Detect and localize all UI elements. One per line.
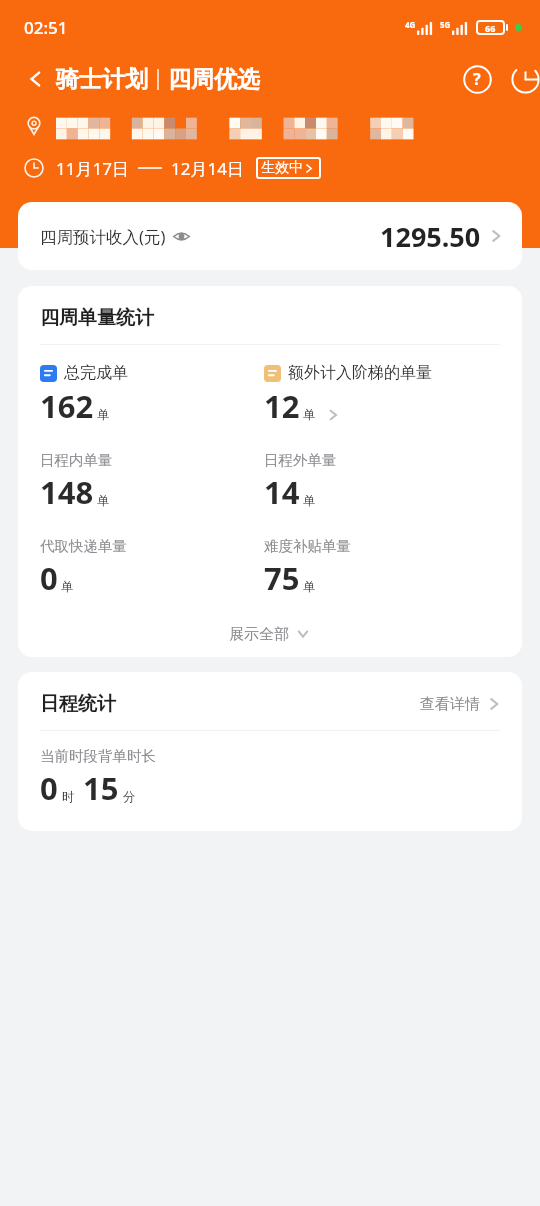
button[interactable]: 展示全部	[18, 611, 522, 657]
staticText: 0	[40, 767, 58, 809]
staticText: 单	[97, 407, 110, 423]
staticText: 单	[61, 579, 74, 595]
staticText: 1295.50	[380, 218, 481, 255]
button[interactable]: Back	[18, 63, 50, 95]
staticText: 生效中	[261, 159, 303, 177]
staticText: 11月17日	[56, 157, 129, 180]
staticText: ?	[473, 68, 481, 90]
staticText: 单	[97, 493, 110, 509]
button[interactable]: 四周预计收入(元)	[18, 202, 522, 270]
staticText: 日程内单量	[40, 451, 113, 469]
staticText: 4G	[405, 19, 416, 30]
staticText: 75	[264, 557, 300, 599]
staticText: 66	[485, 22, 496, 34]
staticText: 单	[303, 493, 316, 509]
staticText: 0	[40, 557, 58, 599]
button[interactable]: 额外计入阶梯的单量	[264, 363, 500, 427]
staticText: 展示全部	[229, 625, 289, 644]
button[interactable]: Help	[456, 58, 498, 100]
staticText: 单	[303, 579, 316, 595]
staticText: 分	[123, 789, 136, 805]
button[interactable]: 生效中	[256, 157, 321, 179]
staticText: 总完成单	[64, 363, 128, 383]
staticText: 代取快递单量	[40, 537, 127, 555]
staticText: 14	[264, 471, 300, 513]
staticText: 148	[40, 471, 94, 513]
staticText: 单	[303, 407, 316, 423]
staticText: 四周单量统计	[40, 306, 154, 330]
staticText: 时	[62, 789, 75, 805]
staticText: 日程外单量	[264, 451, 337, 469]
button[interactable]: Order history	[504, 58, 540, 100]
staticText: 5G	[440, 19, 451, 30]
staticText: 四周预计收入(元)	[40, 225, 166, 248]
staticText: 02:51	[24, 16, 68, 39]
button[interactable]: 日程统计	[18, 672, 522, 730]
button[interactable]: 总完成单	[40, 363, 264, 427]
staticText: 15	[83, 767, 119, 809]
staticText: 162	[40, 385, 94, 427]
staticText: 当前时段背单时长	[40, 747, 156, 765]
staticText: 12	[264, 385, 300, 427]
staticText: 日程统计	[40, 692, 116, 716]
staticText: 额外计入阶梯的单量	[288, 363, 432, 383]
staticText: 难度补贴单量	[264, 537, 351, 555]
staticText: 四周优选	[168, 65, 260, 94]
staticText: 骑士计划	[56, 65, 148, 94]
staticText: 12月14日	[171, 157, 244, 180]
staticText: 查看详情	[420, 695, 480, 714]
